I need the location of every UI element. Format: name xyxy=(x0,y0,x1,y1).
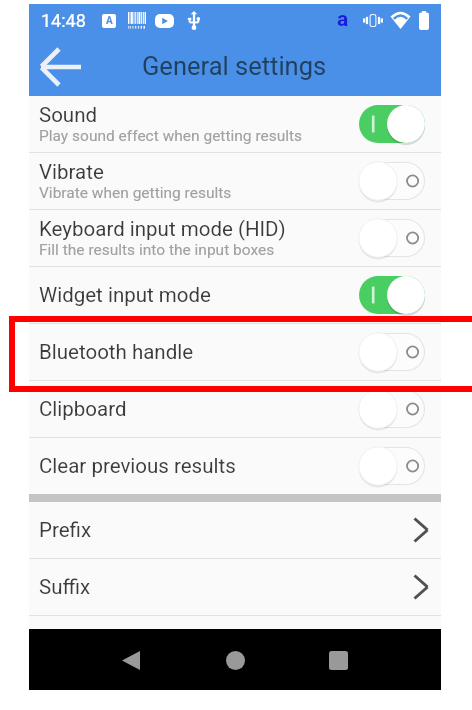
staticText: Vibrate when getting results xyxy=(39,184,232,202)
button[interactable]: Clear previous results xyxy=(29,438,441,494)
staticText: Vibrate xyxy=(39,160,104,184)
staticText: Suffix xyxy=(39,575,413,599)
staticText: Bluetooth handle xyxy=(39,340,194,364)
button[interactable]: Switch off xyxy=(359,161,425,201)
button[interactable]: Switch off xyxy=(359,332,425,372)
staticText: Sound xyxy=(39,103,98,127)
button[interactable]: Back xyxy=(35,39,87,95)
staticText: Clipboard xyxy=(39,397,127,421)
button[interactable]: Suffix xyxy=(29,559,441,615)
staticText: 14:48 xyxy=(41,10,86,31)
button[interactable]: Sound xyxy=(29,96,441,152)
staticText: Widget input mode xyxy=(39,283,211,307)
staticText: Prefix xyxy=(39,518,413,542)
button[interactable]: Prefix xyxy=(29,502,441,558)
button[interactable]: Switch off xyxy=(359,389,425,429)
button[interactable]: Switch off xyxy=(359,446,425,486)
button[interactable]: Switch off xyxy=(359,218,425,258)
button[interactable]: Clipboard xyxy=(29,381,441,437)
staticText: Keyboard input mode (HID) xyxy=(39,217,286,241)
button[interactable]: Keyboard input mode (HID) xyxy=(29,210,441,266)
button[interactable]: Bluetooth handle xyxy=(29,324,441,380)
staticText: A xyxy=(106,15,113,27)
button[interactable]: Recent apps xyxy=(314,636,362,684)
staticText: Fill the results into the input boxes xyxy=(39,241,275,259)
staticText: Clear previous results xyxy=(39,454,236,478)
button[interactable]: Switch on xyxy=(359,104,425,144)
staticText: Play sound effect when getting results xyxy=(39,127,303,145)
button[interactable]: Home xyxy=(211,636,259,684)
staticText: a xyxy=(337,7,349,32)
staticText: General settings xyxy=(142,51,327,81)
button[interactable]: Vibrate xyxy=(29,153,441,209)
button[interactable]: Switch on xyxy=(359,275,425,315)
button[interactable]: Widget input mode xyxy=(29,267,441,323)
button[interactable]: Back xyxy=(107,636,155,684)
